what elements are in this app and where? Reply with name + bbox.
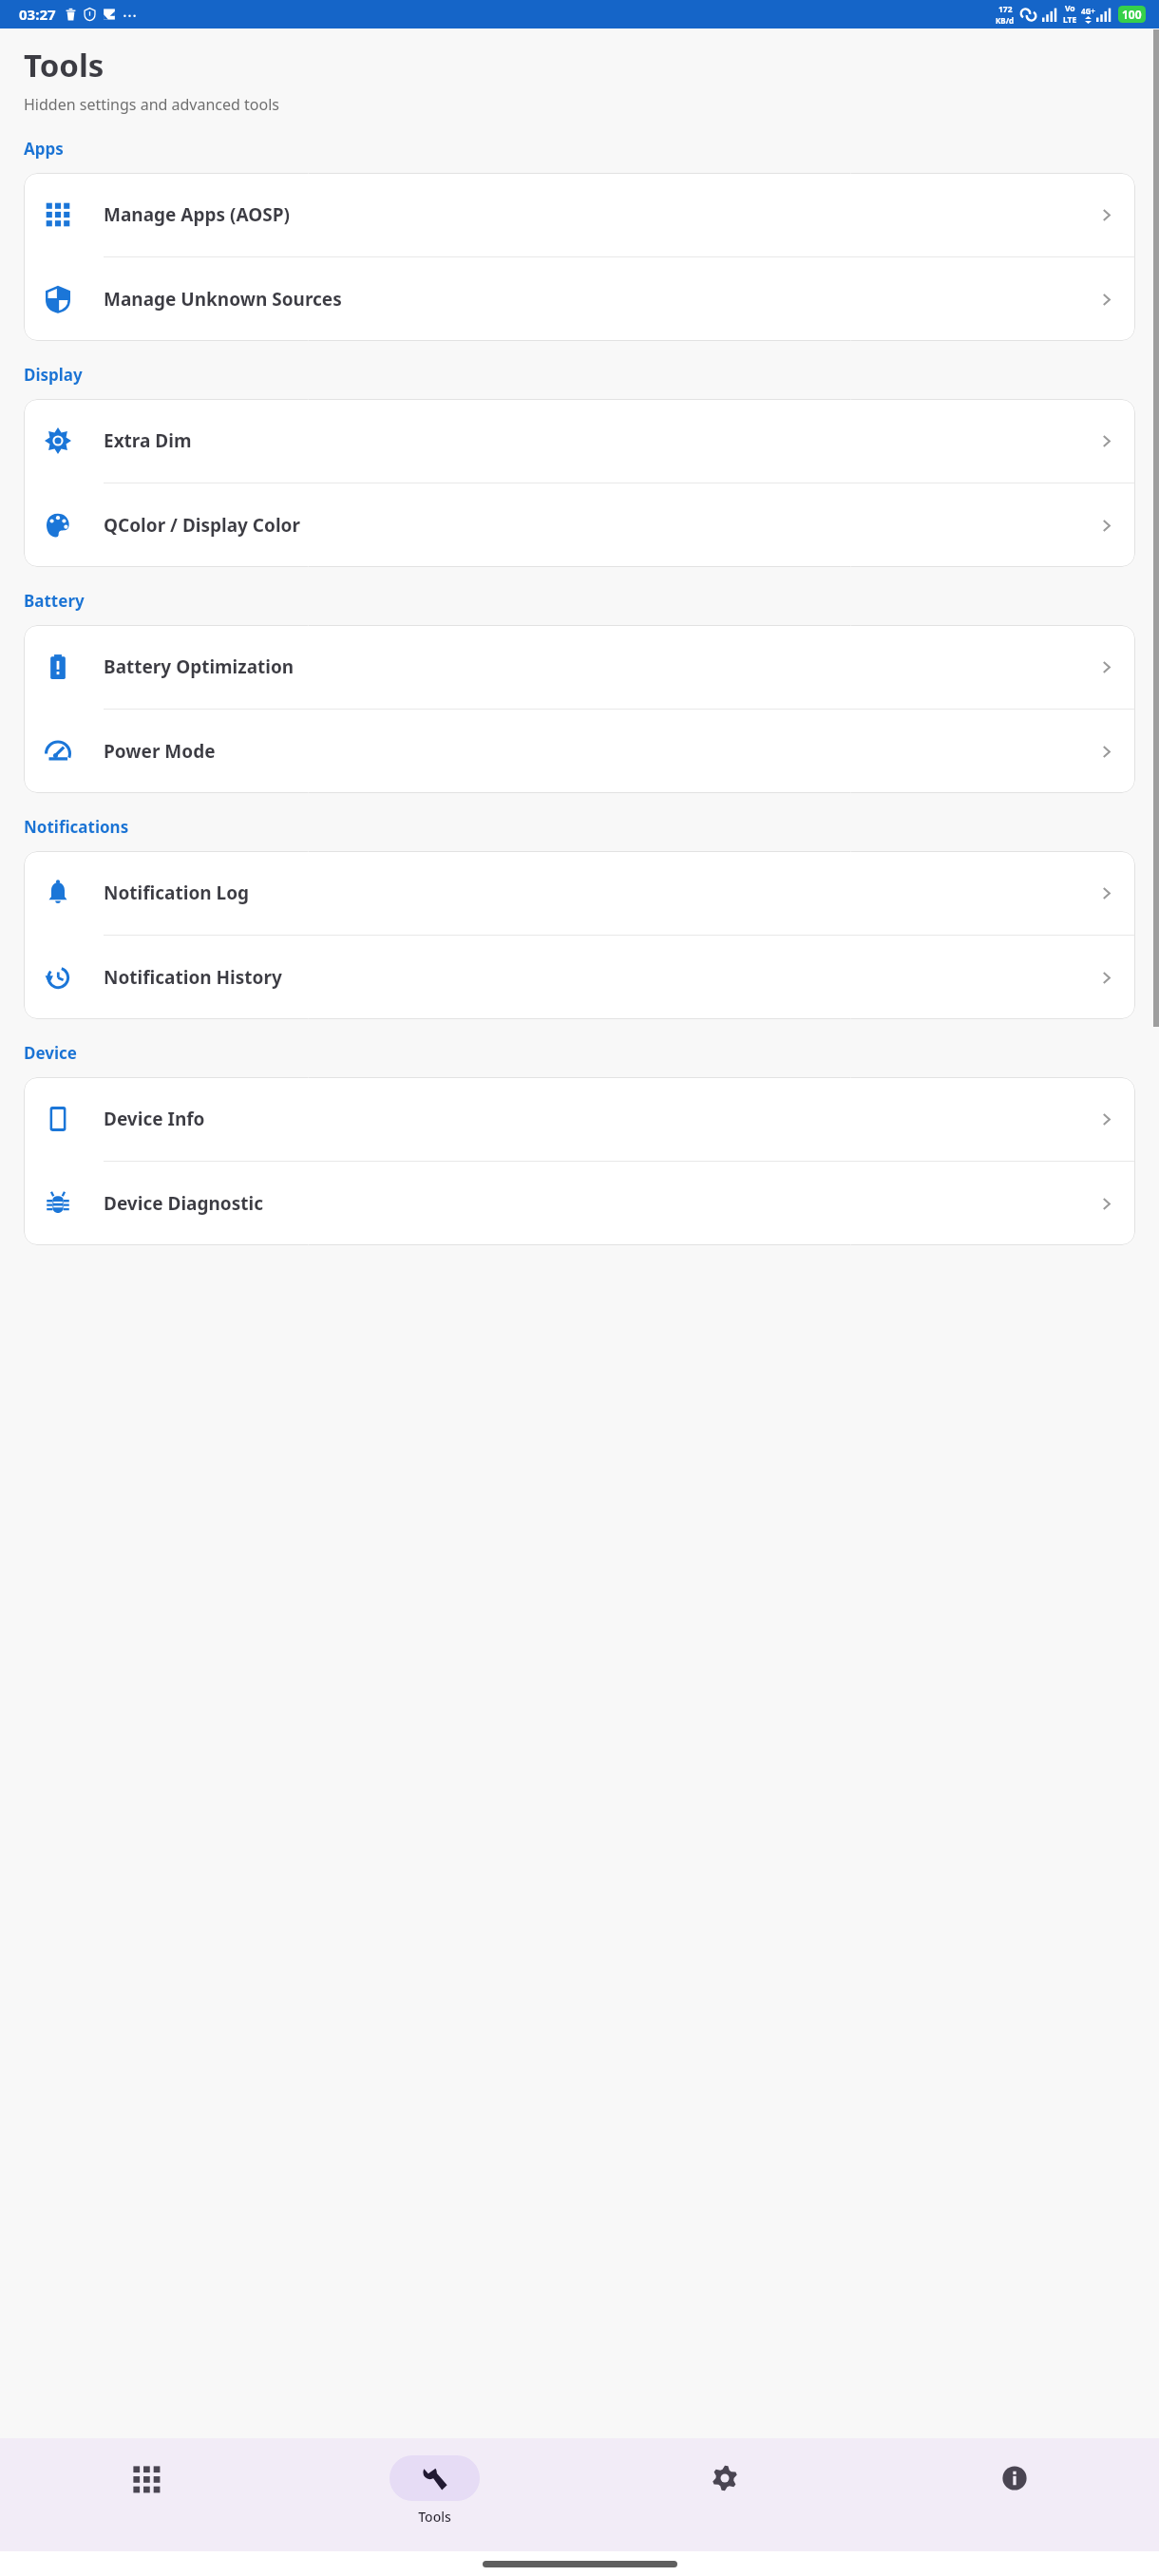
button[interactable]: Tools	[290, 2438, 579, 2551]
staticText: QColor / Display Color	[104, 513, 1098, 538]
staticText: Device	[24, 1042, 77, 1064]
staticText: 03:27	[19, 5, 56, 24]
button[interactable]: Notification Log	[24, 851, 1135, 935]
button[interactable]: Notification History	[24, 936, 1135, 1019]
button[interactable]: Extra Dim	[24, 399, 1135, 483]
button[interactable]: Settings	[579, 2438, 869, 2551]
button[interactable]: Device Diagnostic	[24, 1162, 1135, 1245]
staticText: 4G+	[1081, 6, 1095, 16]
staticText: Battery Optimization	[104, 654, 1098, 679]
staticText: Battery	[24, 590, 85, 612]
staticText: Device Info	[104, 1107, 1098, 1131]
staticText: Tools	[24, 44, 104, 86]
staticText: Extra Dim	[104, 428, 1098, 453]
staticText: KB/d	[996, 15, 1015, 26]
staticText: Tools	[418, 2508, 451, 2526]
staticText: Power Mode	[104, 739, 1098, 764]
button[interactable]: About	[869, 2438, 1159, 2551]
staticText: 172	[998, 4, 1013, 15]
staticText: Manage Unknown Sources	[104, 287, 1098, 312]
button[interactable]: Manage Unknown Sources	[24, 257, 1135, 341]
staticText: Display	[24, 364, 83, 386]
staticText: LTE	[1063, 14, 1077, 26]
staticText: Device Diagnostic	[104, 1191, 1098, 1216]
staticText: Apps	[24, 138, 64, 160]
button[interactable]: Power Mode	[24, 710, 1135, 793]
staticText: Manage Apps (AOSP)	[104, 202, 1098, 227]
staticText: Hidden settings and advanced tools	[24, 94, 279, 115]
staticText: Notifications	[24, 816, 129, 838]
staticText: Notification History	[104, 965, 1098, 990]
staticText: 100	[1122, 7, 1142, 22]
button[interactable]: Device Info	[24, 1077, 1135, 1161]
button[interactable]: QColor / Display Color	[24, 483, 1135, 567]
button[interactable]: Manage Apps (AOSP)	[24, 173, 1135, 256]
staticText: Notification Log	[104, 881, 1098, 905]
button[interactable]: Apps	[0, 2438, 290, 2551]
staticText: Vo	[1065, 3, 1075, 14]
button[interactable]: Battery Optimization	[24, 625, 1135, 709]
